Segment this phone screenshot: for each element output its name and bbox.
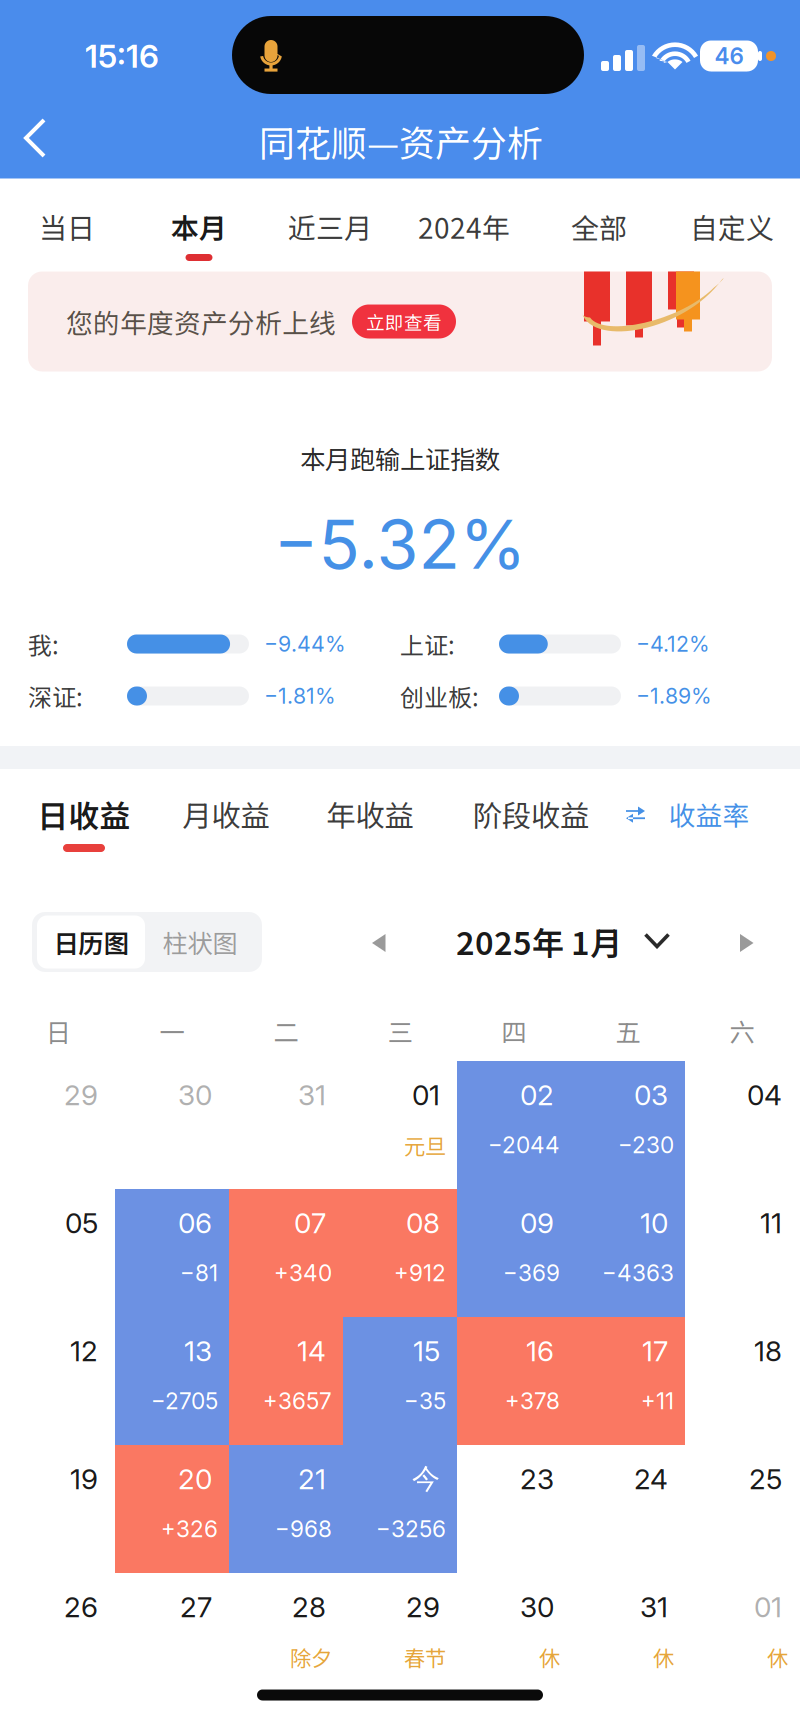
staticText: 六: [729, 1013, 754, 1049]
button[interactable]: 上一月: [351, 915, 407, 971]
staticText: 03: [634, 1078, 668, 1112]
staticText: 01: [754, 1590, 782, 1624]
staticText: −3256: [376, 1515, 446, 1543]
staticText: 自定义: [690, 206, 774, 247]
staticText: 30: [520, 1590, 554, 1624]
button[interactable]: 日收益: [4, 782, 164, 870]
button[interactable]: 01: [685, 1573, 799, 1701]
button[interactable]: 10: [571, 1189, 685, 1317]
staticText: −1.81%: [264, 683, 336, 709]
staticText: 17: [642, 1334, 668, 1368]
button[interactable]: 04: [685, 1061, 799, 1189]
button[interactable]: 29: [1, 1061, 115, 1189]
button[interactable]: 23: [457, 1445, 571, 1573]
staticText: 28: [292, 1590, 326, 1624]
button[interactable]: 31: [229, 1061, 343, 1189]
button[interactable]: 09: [457, 1189, 571, 1317]
button[interactable]: 05: [1, 1189, 115, 1317]
staticText: 26: [64, 1590, 98, 1624]
staticText: 立即查看: [366, 308, 442, 335]
staticText: 四: [501, 1013, 526, 1049]
button[interactable]: 14: [229, 1317, 343, 1445]
staticText: 三: [387, 1013, 412, 1049]
button[interactable]: 自定义: [672, 185, 792, 265]
button[interactable]: 06: [115, 1189, 229, 1317]
staticText: 阶段收益: [473, 793, 589, 835]
staticText: −369: [503, 1259, 560, 1287]
staticText: +340: [274, 1259, 332, 1287]
staticText: 15: [413, 1334, 440, 1368]
staticText: 18: [754, 1334, 782, 1368]
staticText: 本月: [171, 206, 227, 247]
staticText: 13: [184, 1334, 212, 1368]
staticText: −4.12%: [636, 631, 710, 657]
button[interactable]: 30: [115, 1061, 229, 1189]
button[interactable]: 21: [229, 1445, 343, 1573]
button[interactable]: 26: [1, 1573, 115, 1701]
button[interactable]: 24: [571, 1445, 685, 1573]
button[interactable]: 返回: [18, 112, 90, 178]
staticText: 您的年度资产分析上线: [66, 302, 336, 341]
staticText: 05: [65, 1206, 98, 1240]
staticText: 02: [520, 1078, 554, 1112]
staticText: 二: [273, 1013, 298, 1049]
staticText: −2044: [488, 1131, 560, 1159]
staticText: 今: [412, 1461, 440, 1497]
button[interactable]: 12: [1, 1317, 115, 1445]
staticText: −35: [404, 1387, 446, 1415]
button[interactable]: 02: [457, 1061, 571, 1189]
staticText: 2025年 1月: [456, 918, 622, 964]
button[interactable]: 18: [685, 1317, 799, 1445]
button[interactable]: 阶段收益: [451, 782, 611, 870]
staticText: −230: [618, 1131, 674, 1159]
button[interactable]: 29: [343, 1573, 457, 1701]
staticText: 当日: [39, 206, 95, 247]
staticText: 我:: [28, 627, 59, 661]
button[interactable]: 您的年度资产分析上线: [28, 271, 772, 371]
button[interactable]: 今: [343, 1445, 457, 1573]
staticText: 07: [294, 1206, 326, 1240]
button[interactable]: 日历图: [37, 915, 145, 968]
button[interactable]: 全部: [539, 185, 659, 265]
button[interactable]: 20: [115, 1445, 229, 1573]
button[interactable]: 25: [685, 1445, 799, 1573]
button[interactable]: 年收益: [290, 782, 450, 870]
staticText: 近三月: [288, 206, 372, 247]
button[interactable]: 16: [457, 1317, 571, 1445]
button[interactable]: 07: [229, 1189, 343, 1317]
button[interactable]: 收益率: [609, 785, 769, 845]
staticText: 全部: [571, 206, 627, 247]
button[interactable]: 08: [343, 1189, 457, 1317]
button[interactable]: 27: [115, 1573, 229, 1701]
button[interactable]: 19: [1, 1445, 115, 1573]
staticText: 春节: [404, 1642, 446, 1672]
staticText: 14: [297, 1334, 326, 1368]
button[interactable]: 03: [571, 1061, 685, 1189]
staticText: +378: [505, 1387, 560, 1415]
button[interactable]: 15: [343, 1317, 457, 1445]
button[interactable]: 近三月: [270, 185, 390, 265]
staticText: 19: [70, 1462, 98, 1496]
staticText: 04: [747, 1078, 782, 1112]
staticText: 29: [406, 1590, 440, 1624]
button[interactable]: 17: [571, 1317, 685, 1445]
staticText: 年收益: [326, 793, 413, 835]
staticText: 30: [178, 1078, 212, 1112]
button[interactable]: 当日: [7, 185, 127, 265]
button[interactable]: 2024年: [404, 185, 524, 265]
button[interactable]: 11: [685, 1189, 799, 1317]
button[interactable]: 本月: [139, 185, 259, 265]
staticText: 31: [298, 1078, 326, 1112]
button[interactable]: 31: [571, 1573, 685, 1701]
staticText: −1.89%: [636, 683, 712, 709]
button[interactable]: 13: [115, 1317, 229, 1445]
button[interactable]: 选择月份: [629, 913, 685, 969]
button[interactable]: 01: [343, 1061, 457, 1189]
staticText: 休: [539, 1642, 560, 1672]
button[interactable]: 下一月: [719, 915, 775, 971]
button[interactable]: 月收益: [146, 782, 306, 870]
staticText: 本月跑输上证指数: [300, 440, 500, 476]
button[interactable]: 30: [457, 1573, 571, 1701]
button[interactable]: 28: [229, 1573, 343, 1701]
button[interactable]: 柱状图: [146, 915, 254, 968]
